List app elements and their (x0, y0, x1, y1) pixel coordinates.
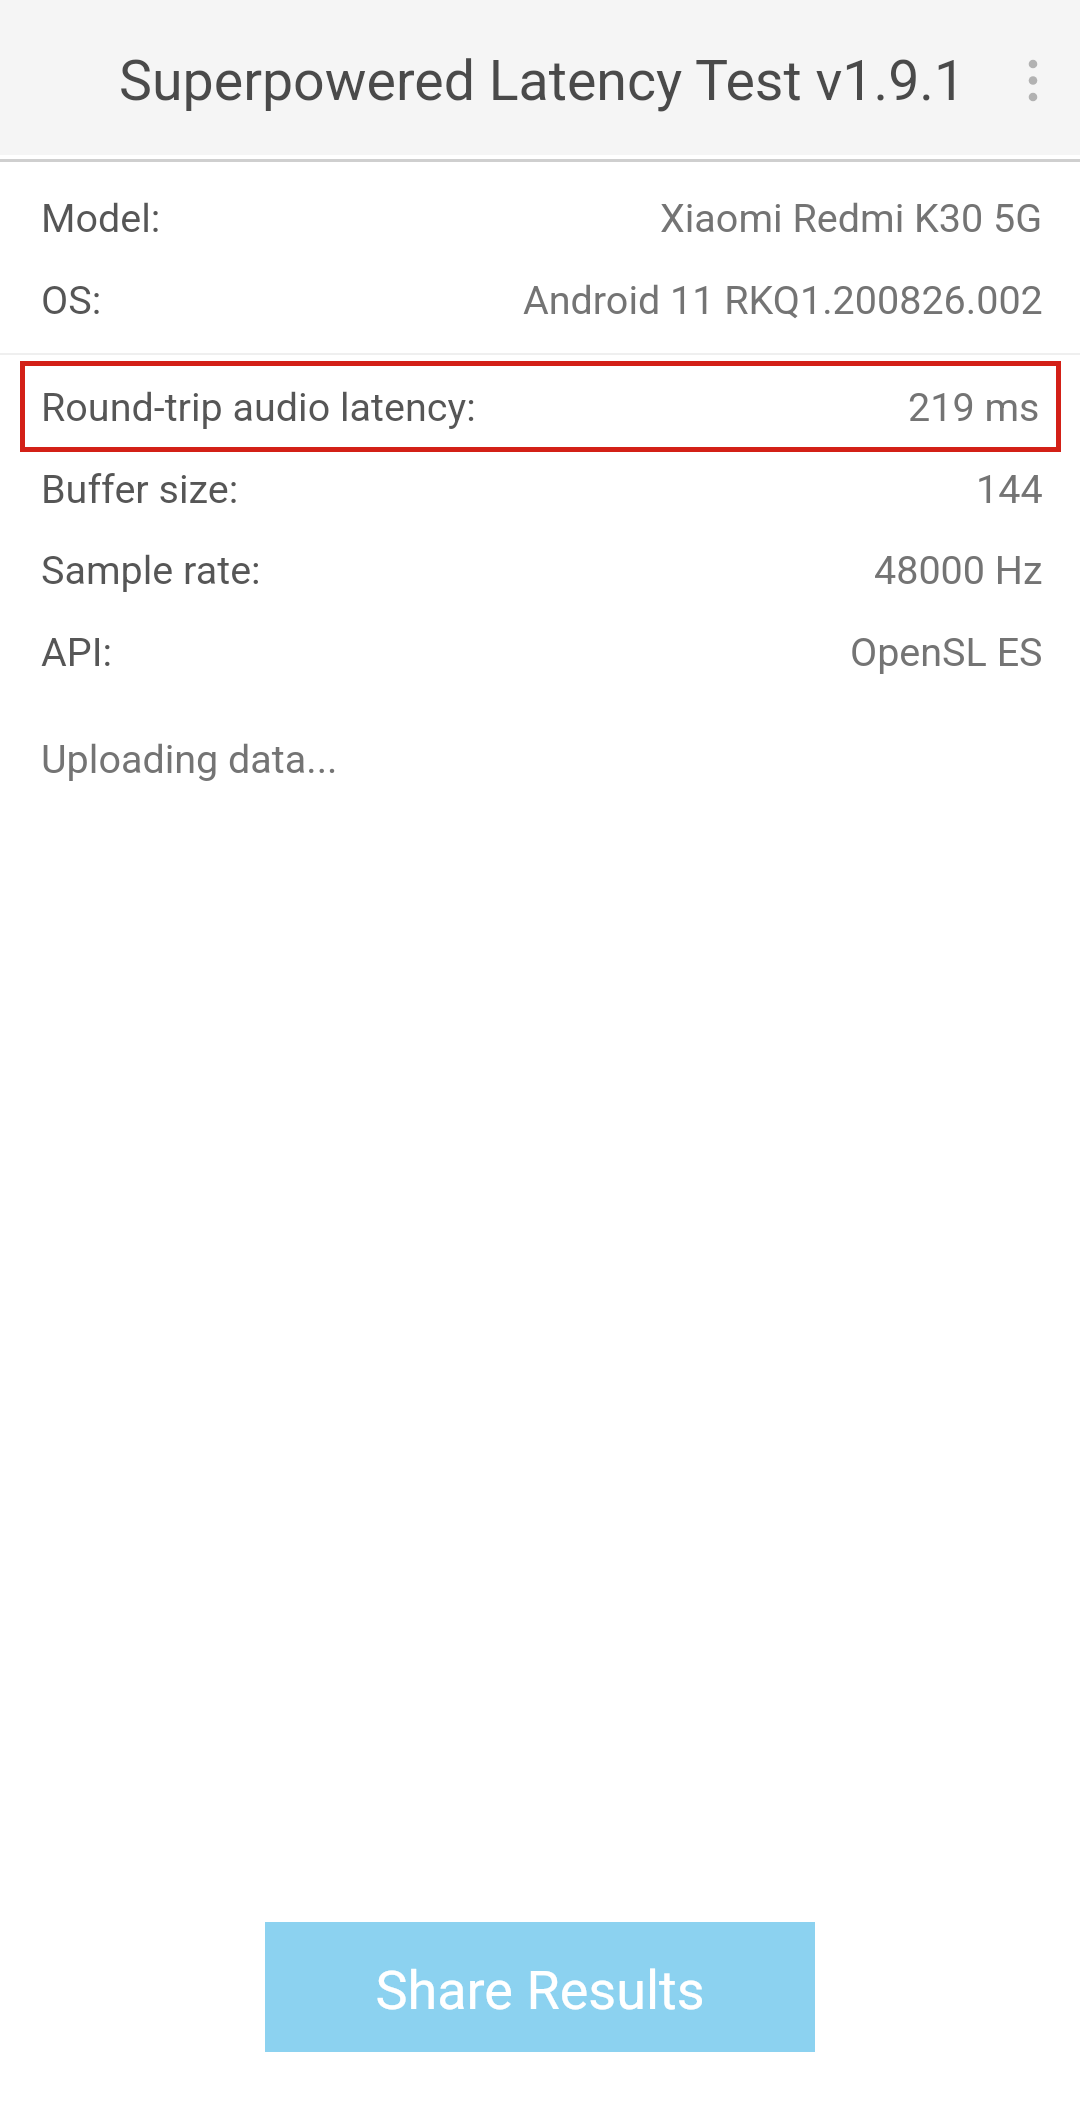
staticText: Superpowered Latency Test v1.9.1 (119, 49, 966, 114)
staticText: OS: (41, 277, 102, 323)
staticText: Share Results (375, 1959, 705, 2022)
staticText: Model: (41, 195, 161, 241)
staticText: 144 (976, 466, 1043, 512)
staticText: Uploading data... (41, 736, 338, 782)
button[interactable]: More options (985, 0, 1080, 155)
staticText: Sample rate: (41, 547, 261, 593)
button[interactable]: OS: (0, 259, 1080, 341)
staticText: Xiaomi Redmi K30 5G (660, 195, 1043, 241)
button[interactable]: Model: (0, 177, 1080, 259)
button[interactable]: Round-trip audio latency: (20, 361, 1061, 452)
staticText: Buffer size: (41, 466, 239, 512)
button[interactable]: Share Results (265, 1922, 815, 2052)
button[interactable]: Buffer size: (0, 448, 1080, 530)
staticText: API: (41, 629, 112, 675)
staticText: OpenSL ES (850, 629, 1043, 675)
staticText: 219 ms (908, 384, 1040, 430)
staticText: Android 11 RKQ1.200826.002 (523, 277, 1043, 323)
button[interactable]: API: (0, 611, 1080, 693)
staticText: 48000 Hz (874, 547, 1043, 593)
staticText: Round-trip audio latency: (41, 384, 476, 430)
button[interactable]: Sample rate: (0, 529, 1080, 611)
